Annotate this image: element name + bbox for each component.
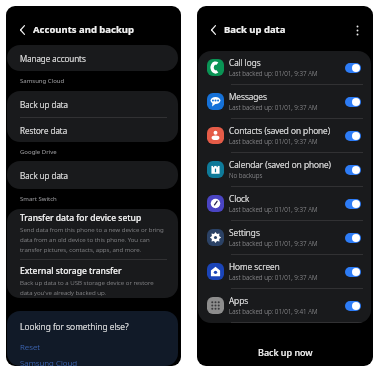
button[interactable]: Calendar (saved on phone): [198, 153, 371, 186]
button[interactable]: Apps: [198, 289, 371, 322]
button[interactable]: Reset: [20, 341, 41, 352]
staticText: Back up data to a USB storage device or …: [20, 278, 167, 297]
button[interactable]: Navigate up: [14, 22, 30, 38]
button[interactable]: Samsung Cloud: [20, 357, 78, 366]
button[interactable]: Toggle Apps: [345, 301, 361, 311]
staticText: Last backed up: 01/01, 9:37 AM: [229, 103, 318, 112]
button[interactable]: Contacts (saved on phone): [198, 119, 371, 152]
button[interactable]: Manage accounts: [7, 45, 178, 71]
button[interactable]: Settings: [198, 221, 371, 254]
button[interactable]: Toggle Contacts (saved on phone): [345, 131, 361, 141]
staticText: Back up now: [258, 346, 313, 358]
button[interactable]: Back up data: [7, 91, 178, 117]
staticText: Last backed up: 01/01, 9:37 AM: [229, 137, 318, 146]
staticText: Settings: [229, 227, 260, 238]
button[interactable]: Back up data: [7, 161, 178, 189]
button[interactable]: Back up now: [197, 334, 373, 366]
button[interactable]: Navigate up: [205, 22, 221, 38]
button[interactable]: Messages: [198, 85, 371, 118]
staticText: Last backed up: 01/01, 9:37 AM: [229, 239, 318, 248]
button[interactable]: Clock: [198, 187, 371, 220]
staticText: Last backed up: 01/01, 9:41 AM: [229, 307, 318, 316]
staticText: Transfer data for device setup: [20, 212, 142, 224]
button[interactable]: Toggle Settings: [345, 233, 361, 243]
staticText: Accounts and backup: [33, 23, 135, 36]
staticText: Samsung Cloud: [20, 77, 65, 85]
staticText: Calendar (saved on phone): [229, 159, 331, 170]
button[interactable]: External storage transfer: [7, 260, 178, 298]
staticText: Home screen: [229, 261, 280, 272]
button[interactable]: Restore data: [7, 118, 178, 142]
staticText: Back up data: [224, 23, 286, 36]
staticText: Smart Switch: [20, 195, 57, 203]
button[interactable]: Call logs: [198, 51, 371, 84]
button[interactable]: Home screen: [198, 255, 371, 288]
staticText: Manage accounts: [20, 53, 86, 64]
staticText: Looking for something else?: [20, 321, 129, 333]
staticText: External storage transfer: [20, 265, 122, 277]
staticText: No backups: [229, 171, 263, 180]
button[interactable]: Toggle Calendar (saved on phone): [345, 165, 361, 175]
button[interactable]: Transfer data for device setup: [7, 209, 178, 259]
staticText: Send data from this phone to a new devic…: [20, 225, 167, 254]
staticText: Messages: [229, 91, 267, 102]
staticText: Last backed up: 01/01, 9:37 AM: [229, 205, 318, 214]
staticText: Apps: [229, 295, 249, 306]
staticText: Google Drive: [20, 148, 57, 156]
staticText: Clock: [229, 193, 250, 204]
staticText: Call logs: [229, 57, 261, 68]
staticText: Last backed up: 01/01, 9:37 AM: [229, 69, 318, 78]
staticText: Contacts (saved on phone): [229, 125, 331, 136]
button[interactable]: Toggle Clock: [345, 199, 361, 209]
staticText: Last backed up: 01/01, 9:37 AM: [229, 273, 318, 282]
button[interactable]: More options: [349, 22, 365, 38]
button[interactable]: Toggle Call logs: [345, 63, 361, 73]
staticText: Back up data: [20, 99, 68, 110]
button[interactable]: Toggle Messages: [345, 97, 361, 107]
staticText: Restore data: [20, 125, 68, 136]
button[interactable]: Toggle Home screen: [345, 267, 361, 277]
staticText: Back up data: [20, 170, 68, 181]
